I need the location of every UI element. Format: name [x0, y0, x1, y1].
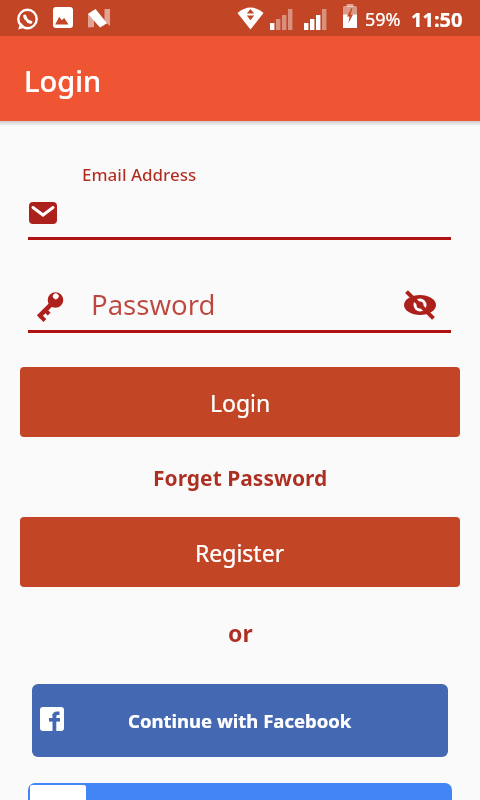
button[interactable]: Password [20, 283, 460, 335]
button[interactable] [402, 288, 438, 322]
button[interactable] [20, 190, 460, 246]
staticText: Register [195, 537, 285, 568]
staticText: or [228, 617, 253, 648]
button[interactable] [28, 783, 452, 800]
staticText: 11:50 [411, 6, 463, 33]
staticText: Continue with Facebook [128, 708, 352, 733]
staticText: Login [210, 387, 271, 418]
button[interactable]: Register [20, 517, 460, 587]
button[interactable]: Login [20, 367, 460, 437]
staticText: 59% [365, 7, 401, 32]
staticText: Password [91, 286, 216, 323]
staticText: Login [24, 61, 102, 100]
button[interactable]: Continue with Facebook [32, 684, 448, 757]
staticText: Forget Password [153, 464, 328, 493]
button[interactable]: Forget Password [140, 460, 340, 496]
staticText: Email Address [82, 163, 197, 186]
